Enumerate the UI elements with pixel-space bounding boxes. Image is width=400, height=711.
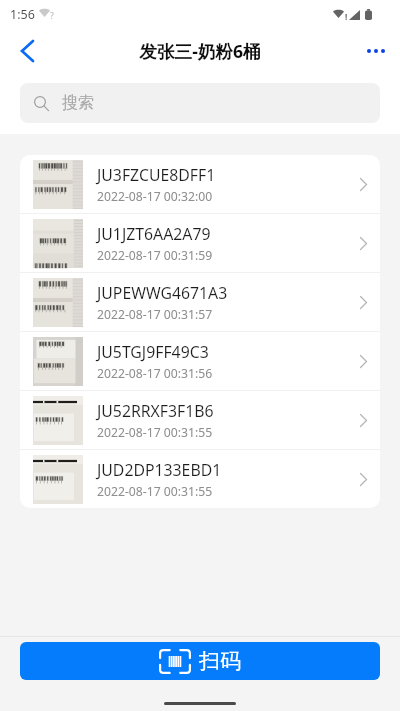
staticText: JU1JZT6AA2A79 xyxy=(97,223,211,245)
button[interactable]: JU1JZT6AA2A79 xyxy=(20,214,380,272)
staticText: 2022-08-17 00:31:59 xyxy=(97,247,213,264)
staticText: 2022-08-17 00:31:55 xyxy=(97,424,213,441)
staticText: JU5TGJ9FF49C3 xyxy=(97,341,209,363)
staticText: JU3FZCUE8DFF1 xyxy=(97,164,216,186)
staticText: 2022-08-17 00:32:00 xyxy=(97,188,213,205)
button[interactable]: JU5TGJ9FF49C3 xyxy=(20,332,380,390)
staticText: ? xyxy=(50,10,54,22)
staticText: JUPEWWG4671A3 xyxy=(97,282,228,304)
staticText: 1:56 xyxy=(10,6,35,23)
button[interactable]: 搜索 xyxy=(20,83,380,123)
staticText: JUD2DP133EBD1 xyxy=(97,459,222,481)
button[interactable]: More options xyxy=(352,28,400,73)
button[interactable]: 扫码 xyxy=(20,642,380,680)
staticText: 2022-08-17 00:31:56 xyxy=(97,365,213,382)
button[interactable]: JUD2DP133EBD1 xyxy=(20,450,380,508)
button[interactable]: JUPEWWG4671A3 xyxy=(20,273,380,331)
staticText: ! xyxy=(345,11,348,22)
button[interactable]: JU52RRXF3F1B6 xyxy=(20,391,380,449)
staticText: 发张三-奶粉6桶 xyxy=(139,39,261,63)
staticText: 搜索 xyxy=(62,93,94,113)
staticText: 2022-08-17 00:31:55 xyxy=(97,483,213,500)
staticText: JU52RRXF3F1B6 xyxy=(97,400,214,422)
button[interactable]: Back xyxy=(0,28,54,73)
staticText: 2022-08-17 00:31:57 xyxy=(97,306,213,323)
button[interactable]: JU3FZCUE8DFF1 xyxy=(20,155,380,213)
staticText: 扫码 xyxy=(199,648,241,674)
